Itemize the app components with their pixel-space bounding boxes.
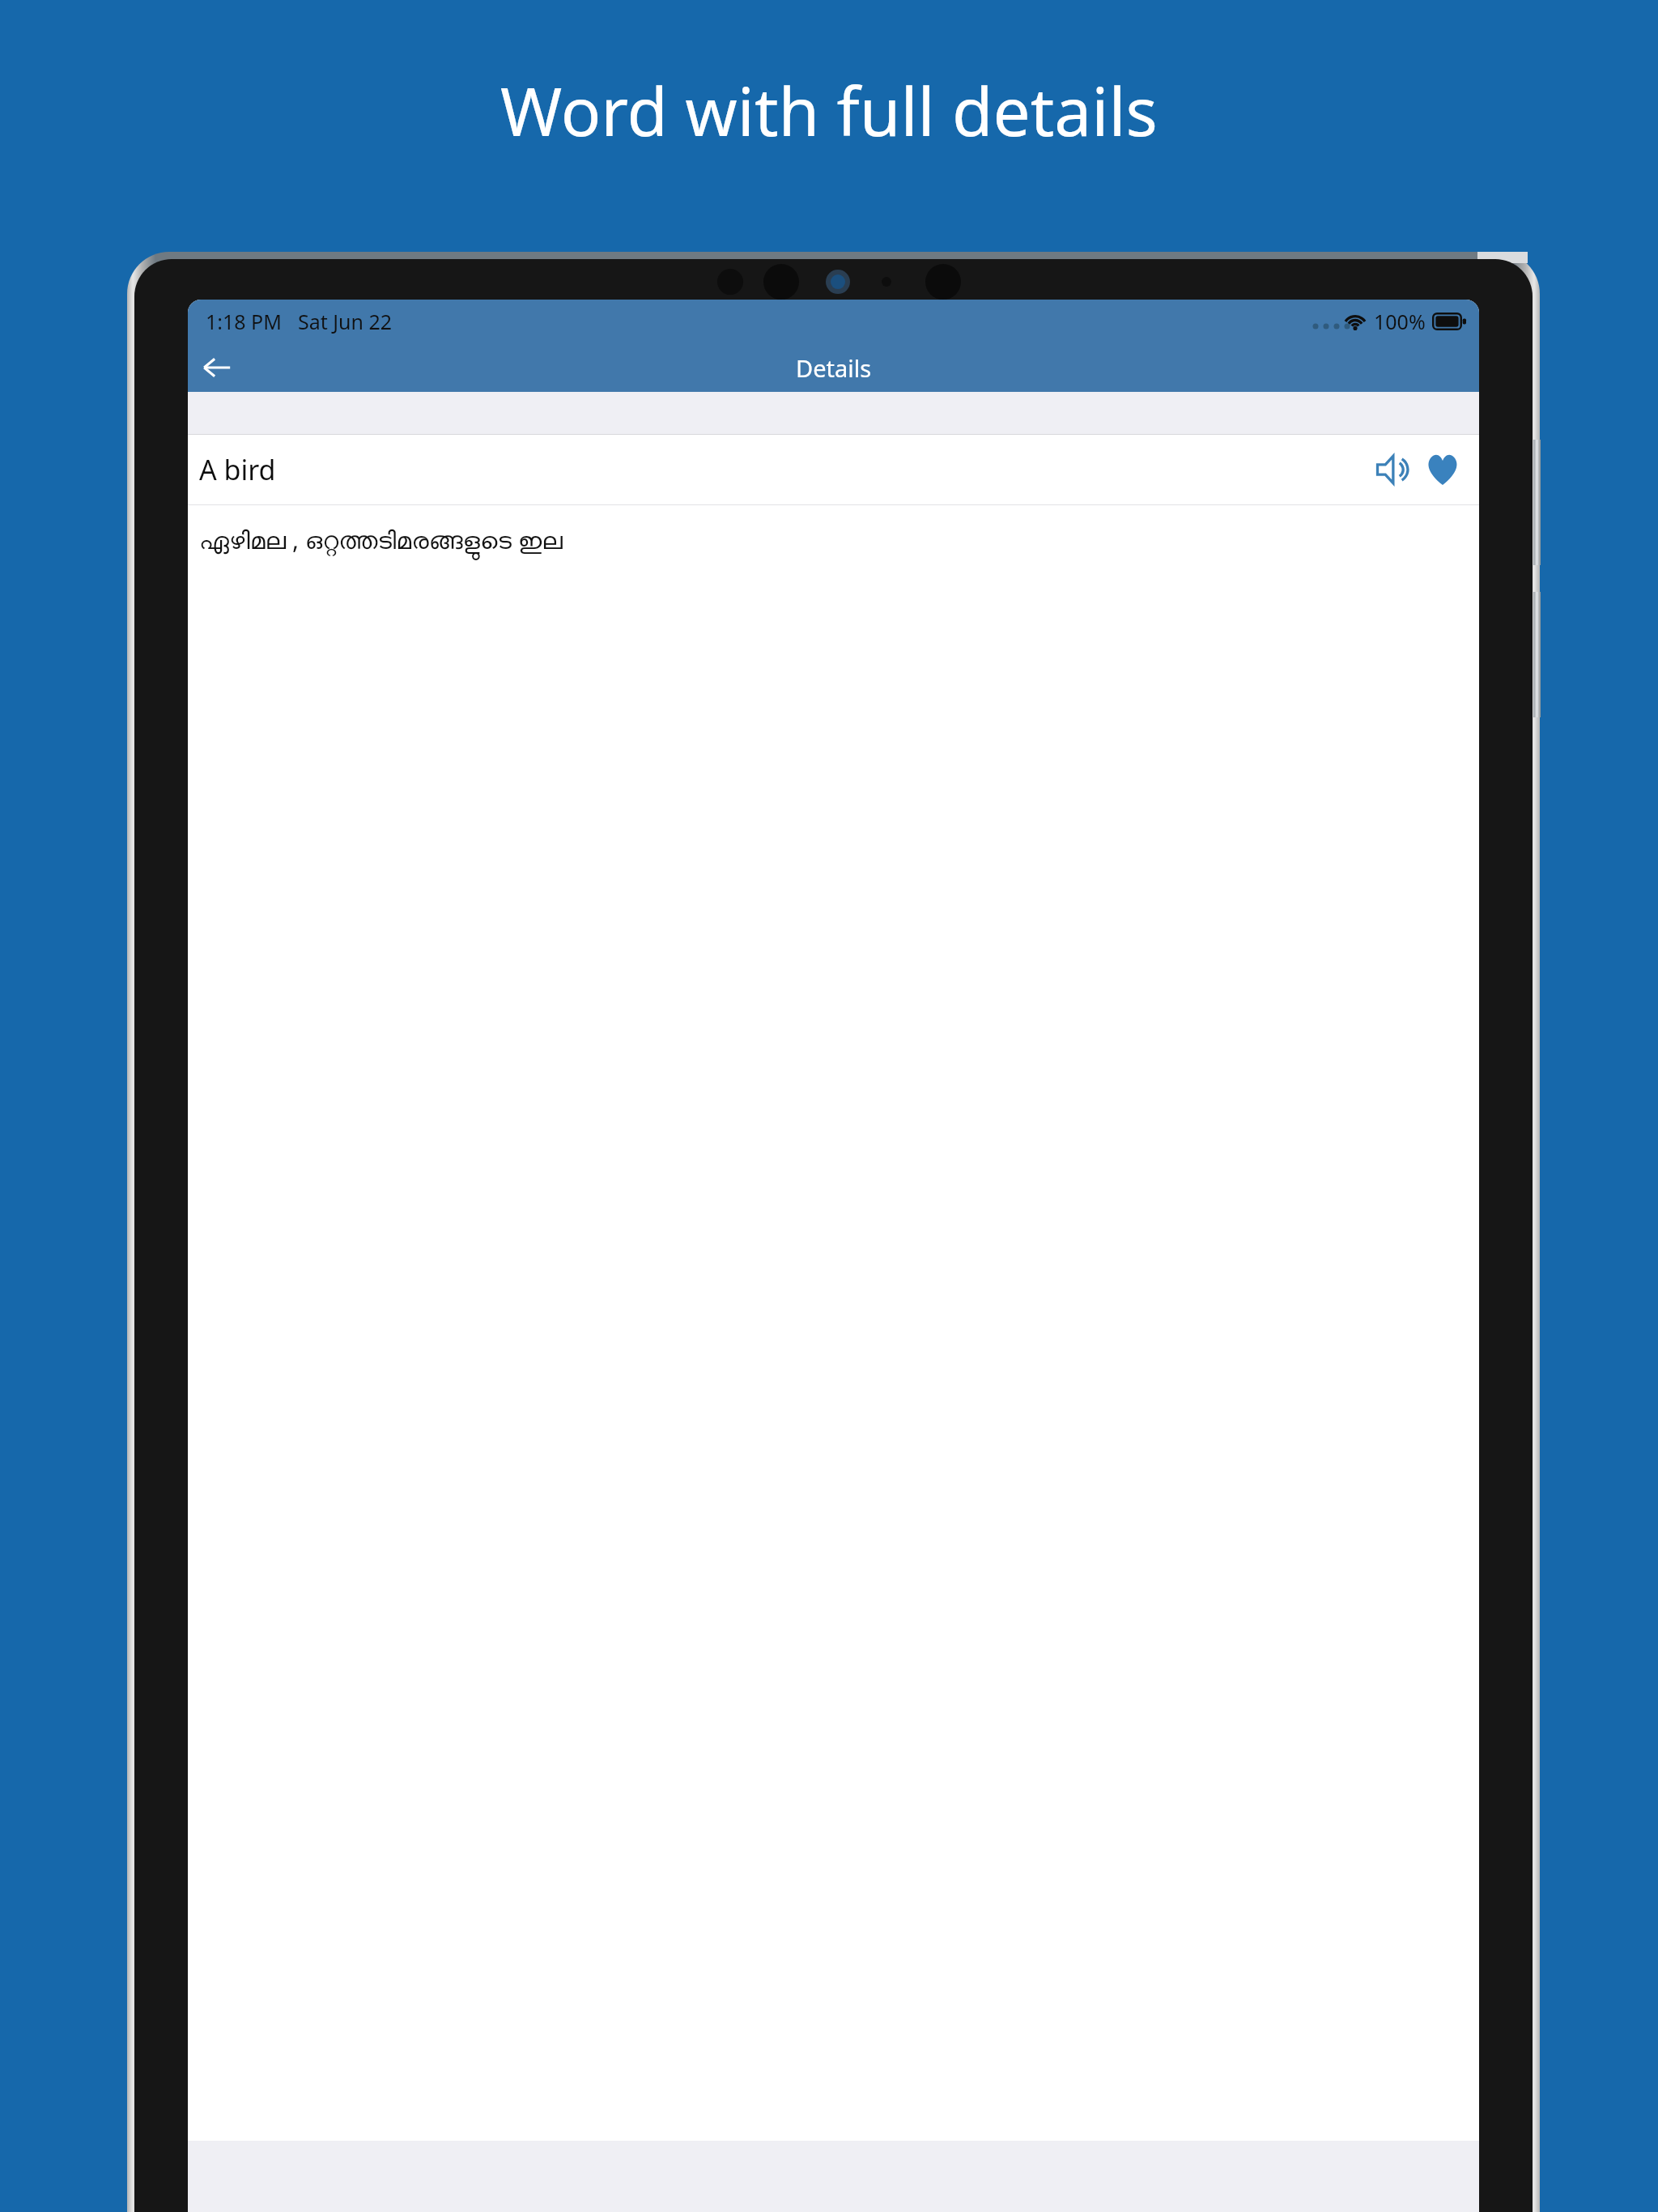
staticText: Details — [796, 352, 872, 384]
staticText: A bird — [199, 451, 276, 488]
staticText: Word with full details — [0, 65, 1658, 155]
button[interactable]: Back — [188, 343, 246, 392]
button[interactable]: Play pronunciation — [1369, 446, 1416, 493]
staticText: 100% — [1374, 308, 1426, 335]
button[interactable]: A bird — [188, 435, 1479, 504]
staticText: Sat Jun 22 — [298, 308, 393, 335]
staticText: 1:18 PM — [206, 308, 282, 335]
button[interactable]: Favorite — [1419, 446, 1466, 493]
staticText: ഏഴിമല , ഒറ്റത്തടിമരങ്ങളുടെ ഇല — [199, 523, 563, 556]
